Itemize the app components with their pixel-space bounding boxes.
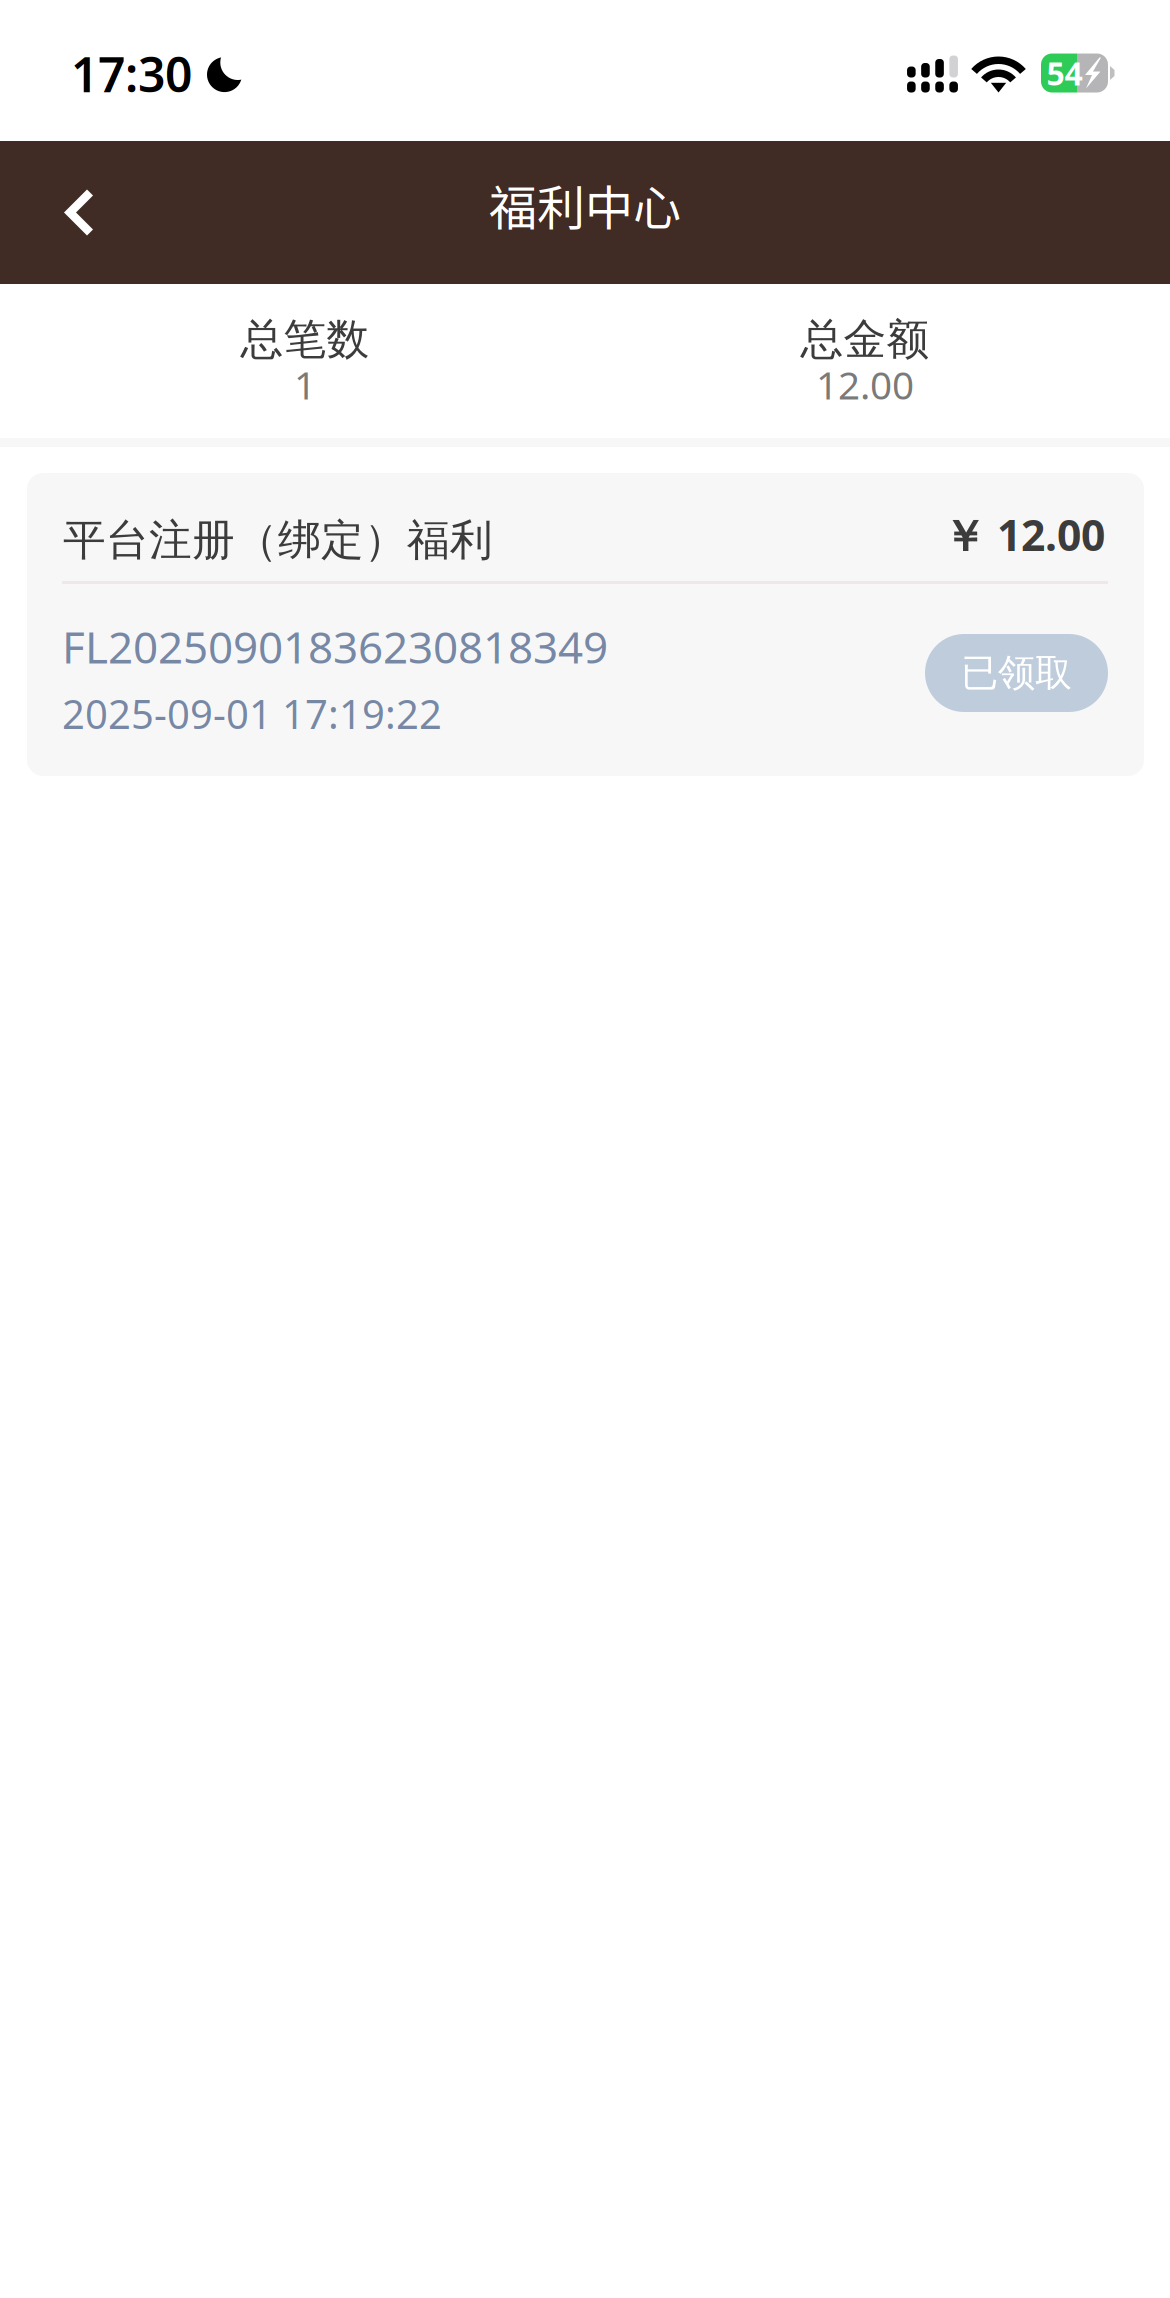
staticText: 1	[294, 359, 316, 410]
staticText: ￥ 12.00	[943, 506, 1105, 563]
staticText: 17:30	[71, 42, 192, 105]
staticText: FL20250901836230818349	[62, 617, 608, 676]
staticText: 平台注册（绑定）福利	[63, 514, 493, 566]
staticText: 2025-09-01 17:19:22	[62, 687, 442, 740]
staticText: 12.00	[816, 359, 914, 410]
staticText: 54	[1046, 52, 1082, 94]
staticText: 总笔数	[240, 313, 369, 366]
staticText: 总金额	[800, 313, 929, 366]
staticText: 已领取	[961, 650, 1072, 696]
button[interactable]: Back	[0, 141, 160, 284]
button[interactable]: 已领取	[925, 634, 1108, 712]
staticText: 福利中心	[489, 170, 681, 239]
